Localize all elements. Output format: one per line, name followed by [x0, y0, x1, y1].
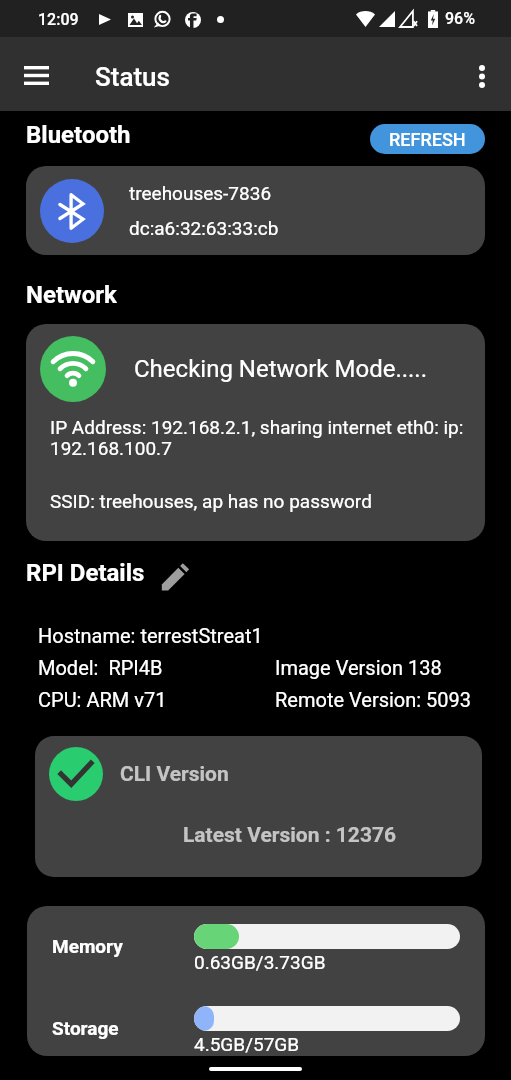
staticText: Network [26, 281, 117, 309]
staticText: SSID: treehouses, ap has no password [50, 490, 372, 512]
button[interactable]: treehouses-7836 [26, 166, 485, 255]
staticText: Hostname: terrestStreat1 [38, 624, 263, 647]
staticText: REFRESH [389, 129, 466, 150]
button[interactable]: CLI Version [35, 736, 482, 877]
staticText: Storage [52, 1017, 119, 1039]
staticText: 4.5GB/57GB [194, 1033, 300, 1055]
button[interactable]: REFRESH [370, 124, 485, 154]
button[interactable]: Checking Network Mode..... [26, 324, 485, 541]
staticText: dc:a6:32:63:33:cb [129, 217, 279, 239]
staticText: CPU: ARM v71 [38, 688, 167, 711]
staticText: 12:09 [38, 10, 79, 29]
staticText: Image Version 138 [275, 656, 442, 679]
staticText: 96% [445, 9, 475, 28]
button[interactable]: Edit RPI details [158, 560, 192, 594]
staticText: RPI Details [26, 559, 145, 587]
staticText: Bluetooth [26, 121, 131, 149]
staticText: Latest Version : 12376 [183, 823, 397, 848]
button[interactable]: More options [458, 52, 506, 100]
staticText: IP Address: 192.168.2.1, sharing interne… [50, 416, 466, 460]
staticText: Remote Version: 5093 [275, 688, 472, 711]
staticText: Memory [52, 935, 123, 957]
staticText: 0.63GB/3.73GB [194, 951, 326, 973]
staticText: Checking Network Mode..... [134, 355, 428, 383]
staticText: CLI Version [120, 762, 229, 787]
staticText: Status [95, 62, 170, 92]
staticText: Model: RPI4B [38, 656, 163, 679]
staticText: treehouses-7836 [129, 182, 272, 204]
button[interactable]: Open navigation menu [12, 51, 60, 99]
